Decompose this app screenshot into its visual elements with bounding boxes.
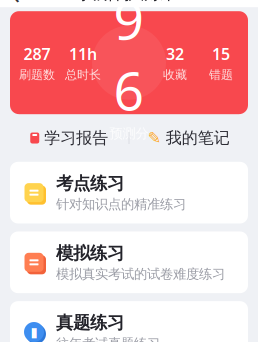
staticText: 96: [113, 0, 144, 125]
staticText: 刷题数: [19, 67, 55, 82]
button[interactable]: Back: [0, 0, 32, 7]
button[interactable]: 等级保护测评: [67, 0, 191, 8]
staticText: 预测分: [109, 125, 148, 142]
button[interactable]: 考点练习: [10, 162, 248, 223]
staticText: 考点练习: [56, 173, 124, 194]
staticText: 11h: [69, 43, 97, 64]
staticText: 往年考试真题练习: [56, 335, 160, 342]
button[interactable]: 模拟练习: [10, 231, 248, 293]
staticText: 模拟练习: [56, 242, 124, 264]
staticText: 模拟真实考试的试卷难度练习: [56, 266, 225, 282]
staticText: ‹: [11, 0, 20, 12]
staticText: 287: [23, 43, 50, 64]
staticText: ▮: [30, 324, 37, 339]
staticText: 我的笔记: [166, 128, 230, 148]
staticText: 针对知识点的精准练习: [56, 196, 186, 212]
staticText: 学习报告: [44, 128, 108, 148]
staticText: 错题: [209, 67, 233, 82]
button[interactable]: ▮: [10, 301, 248, 342]
staticText: 32: [166, 43, 184, 64]
staticText: 真题练习: [56, 312, 124, 333]
button[interactable]: ✎: [129, 122, 248, 154]
staticText: ✎: [148, 129, 161, 147]
button[interactable]: 学习报告: [10, 122, 128, 154]
staticText: 收藏: [163, 67, 187, 82]
staticText: 等级保护测评: [73, 0, 175, 4]
staticText: 15: [212, 43, 230, 64]
staticText: 总时长: [65, 67, 101, 82]
